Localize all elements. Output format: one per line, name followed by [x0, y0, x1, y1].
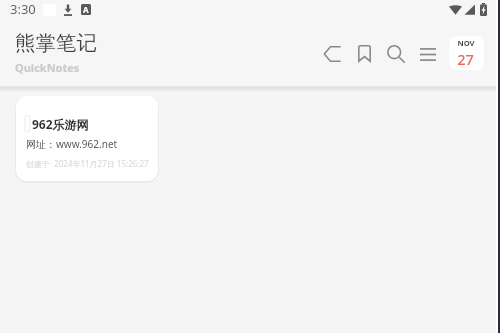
button[interactable]: Search: [381, 39, 411, 69]
staticText: QuickNotes: [15, 60, 80, 75]
button[interactable]: Bookmark: [349, 38, 379, 68]
staticText: 熊掌笔记: [15, 30, 97, 56]
staticText: 网址：www.962.net: [26, 137, 118, 151]
staticText: 962乐游网: [32, 116, 89, 132]
button[interactable]: Back: [317, 39, 347, 69]
staticText: 创建于 2024年11月27日 15:26:27: [26, 158, 149, 169]
staticText: 27: [457, 49, 474, 69]
staticText: NOV: [457, 38, 475, 48]
button[interactable]: Calendar November 27: [449, 36, 484, 70]
staticText: 3:30: [10, 0, 36, 18]
button[interactable]: Menu: [413, 39, 443, 69]
staticText: A: [83, 4, 89, 15]
button[interactable]: 962乐游网: [16, 96, 158, 181]
